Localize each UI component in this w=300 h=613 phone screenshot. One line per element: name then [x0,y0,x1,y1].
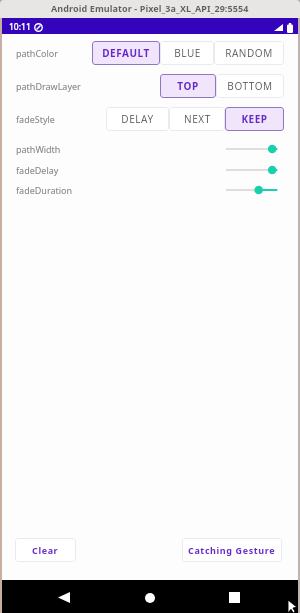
button[interactable]: BOTTOM [216,74,284,98]
button[interactable]: pathWidth [222,140,281,158]
button[interactable]: fadeDuration [222,181,281,199]
button[interactable]: Home [134,582,165,613]
staticText: TOP [177,79,199,93]
button[interactable]: RANDOM [214,41,284,65]
button[interactable]: KEEP [225,107,284,131]
staticText: DELAY [121,112,154,126]
button[interactable]: BLUE [160,41,214,65]
button[interactable]: fadeDelay [222,161,281,179]
staticText: pathColor [16,47,59,59]
staticText: Clear [32,544,59,556]
staticText: DEFAULT [102,46,150,60]
staticText: KEEP [241,112,268,126]
staticText: fadeStyle [16,113,55,125]
staticText: pathWidth [16,143,61,155]
staticText: pathDrawLayer [16,80,81,92]
button[interactable]: Catching Gesture [182,538,282,562]
staticText: Catching Gesture [188,544,276,556]
staticText: NEXT [184,112,211,126]
button[interactable]: Recent apps [219,582,250,613]
staticText: Android Emulator - Pixel_3a_XL_API_29:55… [51,2,249,14]
staticText: BLUE [174,46,201,60]
button[interactable]: DEFAULT [92,41,160,65]
staticText: fadeDelay [16,164,59,176]
button[interactable]: Clear [15,538,76,562]
staticText: BOTTOM [227,79,273,93]
button[interactable]: NEXT [169,107,225,131]
staticText: RANDOM [225,46,273,60]
button[interactable]: DELAY [106,107,169,131]
staticText: fadeDuration [16,184,73,196]
staticText: 10:11 [9,21,31,33]
button[interactable]: TOP [160,74,216,98]
button[interactable]: Back [48,582,79,613]
